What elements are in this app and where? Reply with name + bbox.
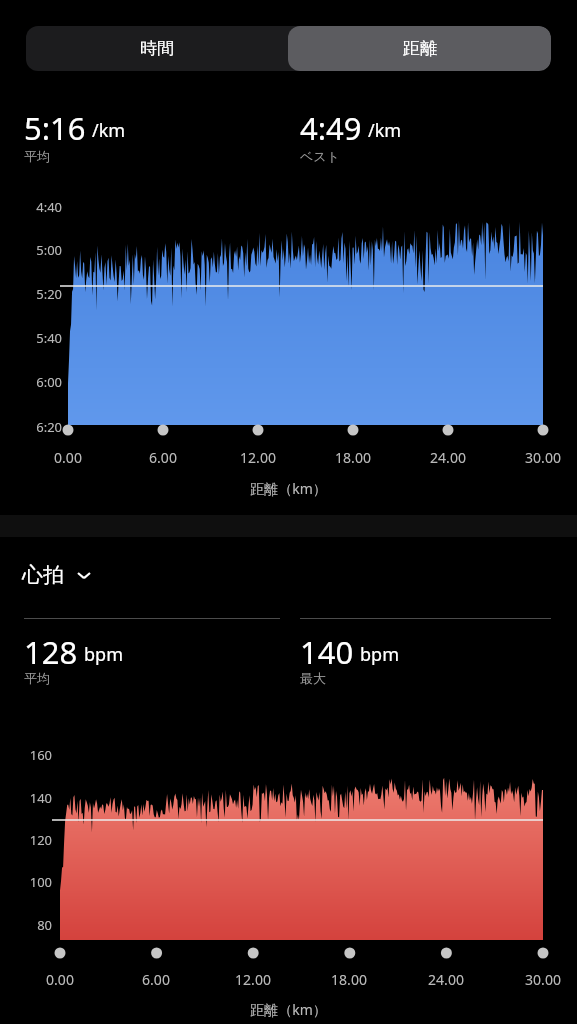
- staticText: 0.00: [32, 970, 88, 989]
- staticText: 6.00: [128, 970, 184, 989]
- staticText: bpm: [84, 642, 123, 667]
- staticText: 140: [12, 789, 52, 807]
- staticText: ベスト: [300, 148, 340, 164]
- staticText: 80: [12, 916, 52, 934]
- staticText: /km: [368, 118, 402, 143]
- staticText: 距離: [403, 38, 437, 59]
- staticText: 心拍: [22, 562, 64, 588]
- staticText: 最大: [300, 670, 326, 686]
- staticText: 5:40: [22, 329, 62, 347]
- staticText: 平均: [24, 148, 50, 164]
- staticText: 100: [12, 873, 52, 891]
- staticText: 平均: [24, 670, 50, 686]
- staticText: 128: [24, 631, 78, 673]
- staticText: 120: [12, 831, 52, 849]
- staticText: 時間: [140, 38, 174, 59]
- staticText: 4:49: [300, 107, 362, 149]
- staticText: 距離（km）: [0, 1000, 577, 1019]
- staticText: 18.00: [321, 970, 377, 989]
- staticText: 24.00: [420, 448, 476, 467]
- staticText: 0.00: [40, 448, 96, 467]
- staticText: 5:20: [22, 285, 62, 303]
- staticText: 4:40: [22, 198, 62, 216]
- button[interactable]: 心拍: [22, 562, 94, 588]
- staticText: 距離（km）: [0, 479, 577, 498]
- staticText: 140: [300, 631, 354, 673]
- staticText: 30.00: [515, 448, 571, 467]
- staticText: 6:20: [22, 418, 62, 436]
- staticText: 12.00: [225, 970, 281, 989]
- button[interactable]: 時間: [26, 26, 288, 71]
- button[interactable]: 距離: [288, 26, 551, 71]
- staticText: bpm: [360, 642, 399, 667]
- staticText: 160: [12, 746, 52, 764]
- staticText: /km: [92, 118, 126, 143]
- staticText: 6:00: [22, 373, 62, 391]
- staticText: 5:16: [24, 107, 86, 149]
- staticText: 6.00: [135, 448, 191, 467]
- other: Expand heart rate: [74, 565, 94, 585]
- staticText: 24.00: [418, 970, 474, 989]
- staticText: 12.00: [230, 448, 286, 467]
- staticText: 30.00: [515, 970, 571, 989]
- staticText: 18.00: [325, 448, 381, 467]
- staticText: 5:00: [22, 241, 62, 259]
